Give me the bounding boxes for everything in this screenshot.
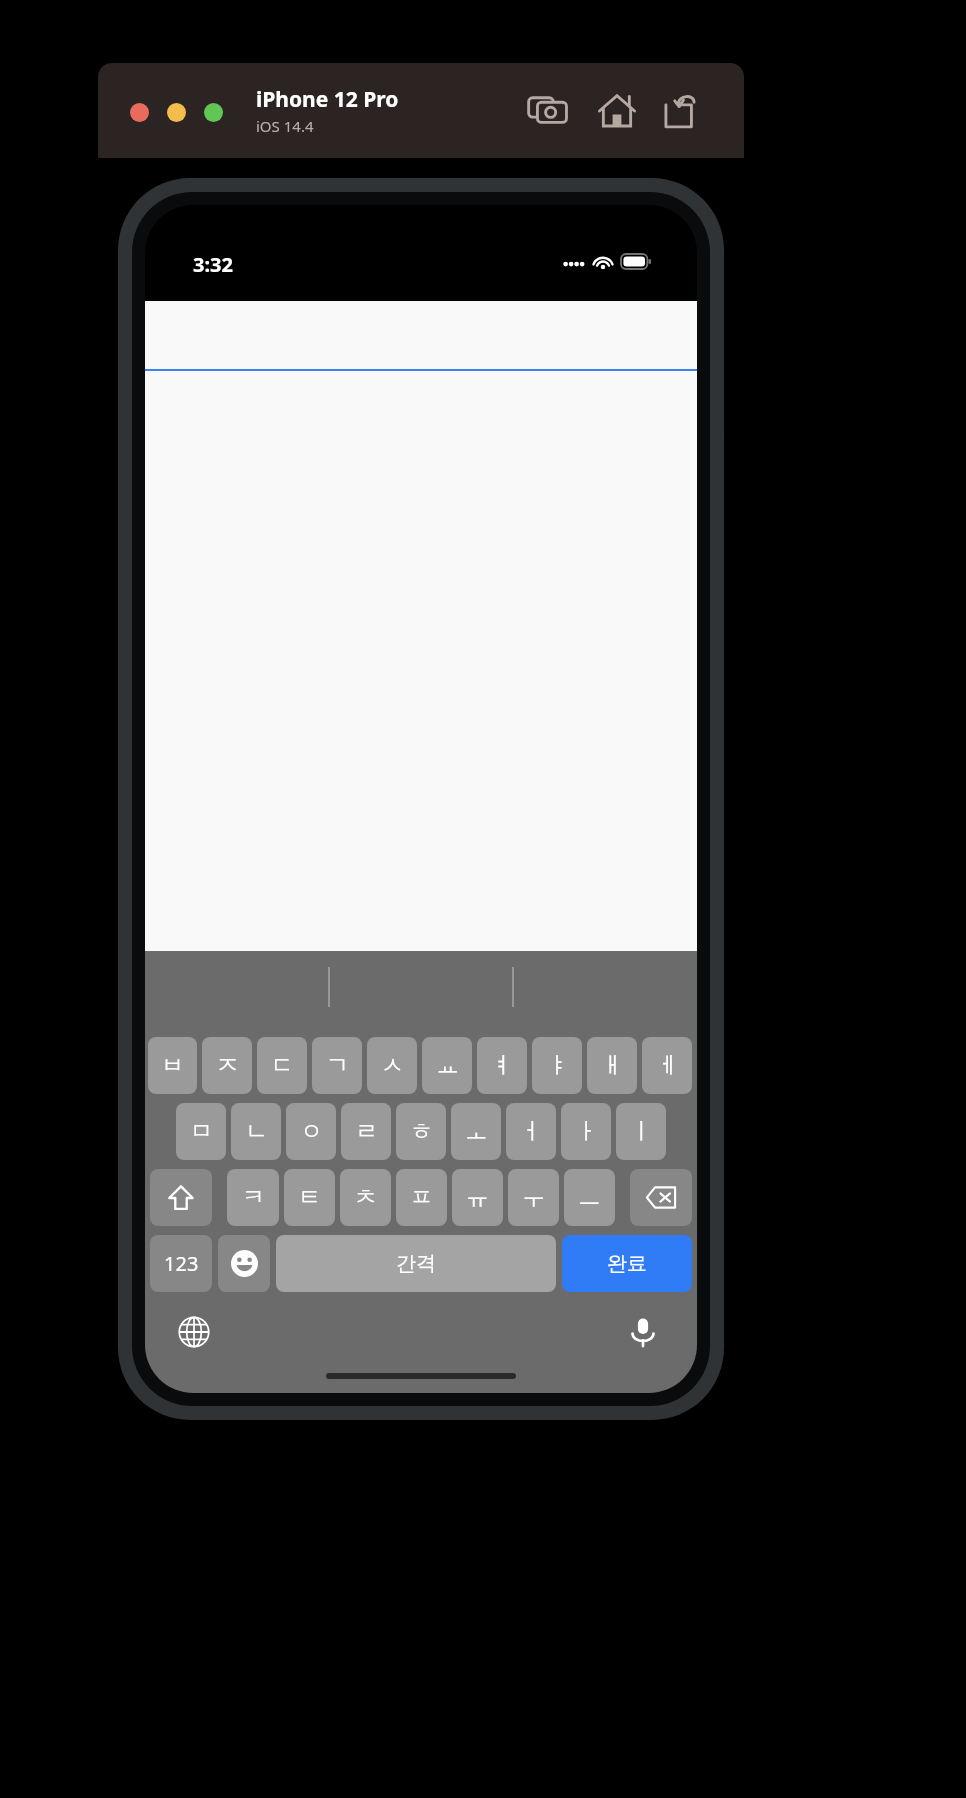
button[interactable]: 완료 — [562, 1235, 692, 1292]
staticText: ㅗ — [465, 1117, 488, 1146]
button[interactable]: ㅗ — [451, 1103, 501, 1160]
button[interactable]: ㅛ — [422, 1037, 472, 1094]
button[interactable]: ㅍ — [396, 1169, 447, 1226]
staticText: ㄱ — [326, 1051, 349, 1080]
staticText: ㅇ — [300, 1117, 323, 1146]
button[interactable]: Dictation — [620, 1309, 666, 1355]
button[interactable]: ㅌ — [284, 1169, 335, 1226]
staticText: ㅔ — [656, 1051, 679, 1080]
staticText: ㅜ — [522, 1183, 545, 1212]
staticText: iOS 14.4 — [256, 116, 314, 136]
button[interactable]: Shift — [150, 1169, 212, 1226]
button[interactable]: Screenshot — [526, 89, 570, 133]
button[interactable]: 간격 — [276, 1235, 556, 1292]
button[interactable]: ㅁ — [176, 1103, 226, 1160]
button[interactable]: Emoji — [218, 1235, 270, 1292]
button[interactable]: 123 — [150, 1235, 212, 1292]
staticText: ㅅ — [381, 1051, 404, 1080]
button[interactable]: ㅎ — [396, 1103, 446, 1160]
button[interactable]: Zoom — [204, 103, 223, 122]
button[interactable]: Close — [130, 103, 149, 122]
button[interactable]: ㅠ — [452, 1169, 503, 1226]
button[interactable]: ㄹ — [341, 1103, 391, 1160]
button[interactable]: ㅔ — [642, 1037, 692, 1094]
button[interactable]: ㅏ — [561, 1103, 611, 1160]
button[interactable]: ㄴ — [231, 1103, 281, 1160]
button[interactable]: ㅊ — [340, 1169, 391, 1226]
button[interactable]: ㅕ — [477, 1037, 527, 1094]
staticText: ㄹ — [355, 1117, 378, 1146]
staticText: ㅣ — [630, 1117, 653, 1146]
button[interactable]: ㅋ — [227, 1169, 279, 1226]
button[interactable]: Switch keyboard — [171, 1309, 217, 1355]
staticText: 간격 — [396, 1251, 436, 1276]
button[interactable]: Backspace — [630, 1169, 692, 1226]
button[interactable]: ㅐ — [587, 1037, 637, 1094]
staticText: ㅊ — [354, 1183, 377, 1212]
button[interactable]: Minimise — [167, 103, 186, 122]
button[interactable]: ㅣ — [616, 1103, 666, 1160]
staticText: ㅎ — [410, 1117, 433, 1146]
staticText: ㅂ — [161, 1051, 184, 1080]
button[interactable]: ㄷ — [257, 1037, 307, 1094]
staticText: 완료 — [607, 1251, 647, 1276]
button[interactable]: ㅜ — [508, 1169, 559, 1226]
staticText: ㄷ — [271, 1051, 294, 1080]
button[interactable]: ㅂ — [148, 1037, 197, 1094]
staticText: ㅠ — [466, 1183, 489, 1212]
button[interactable]: ㅈ — [202, 1037, 252, 1094]
staticText: ㅌ — [298, 1183, 321, 1212]
button[interactable]: ㄱ — [312, 1037, 362, 1094]
staticText: ㅛ — [436, 1051, 459, 1080]
staticText: ㅕ — [491, 1051, 514, 1080]
staticText: iPhone 12 Pro — [256, 85, 399, 114]
button[interactable]: Home — [595, 89, 639, 133]
staticText: ㅁ — [190, 1117, 213, 1146]
button[interactable]: ㅑ — [532, 1037, 582, 1094]
staticText: ㅑ — [546, 1051, 569, 1080]
staticText: 123 — [164, 1250, 199, 1277]
button[interactable]: Rotate — [658, 89, 702, 133]
staticText: ㅐ — [601, 1051, 624, 1080]
staticText: ㅡ — [578, 1183, 601, 1212]
staticText: ㄴ — [245, 1117, 268, 1146]
staticText: 3:32 — [193, 251, 233, 278]
staticText: ㅋ — [242, 1183, 265, 1212]
button[interactable]: ㅇ — [286, 1103, 336, 1160]
staticText: ㅍ — [410, 1183, 433, 1212]
button[interactable]: ㅡ — [564, 1169, 615, 1226]
staticText: ㅏ — [575, 1117, 598, 1146]
staticText: ㅈ — [216, 1051, 239, 1080]
button[interactable]: ㅅ — [367, 1037, 417, 1094]
staticText: ㅓ — [520, 1117, 543, 1146]
button[interactable]: ㅓ — [506, 1103, 556, 1160]
